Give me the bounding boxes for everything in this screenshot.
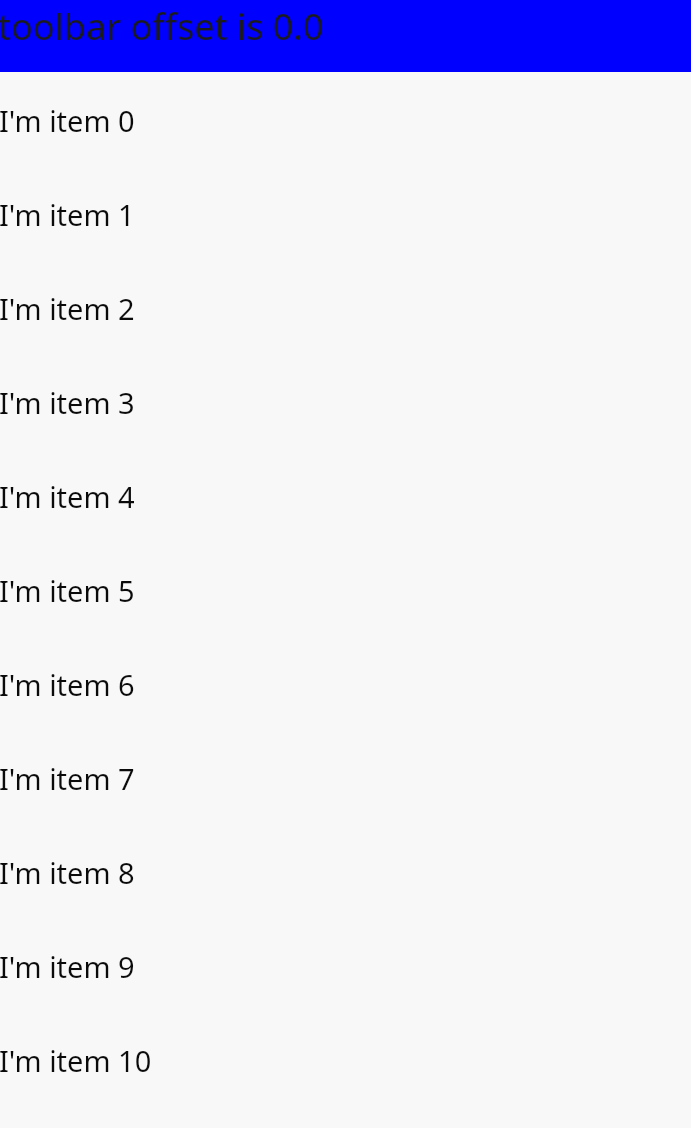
button[interactable]: I'm item 9 xyxy=(0,918,691,1012)
button[interactable]: I'm item 0 xyxy=(0,72,691,166)
button[interactable]: I'm item 4 xyxy=(0,448,691,542)
staticText: I'm item 6 xyxy=(0,665,135,704)
staticText: I'm item 5 xyxy=(0,571,135,610)
staticText: I'm item 10 xyxy=(0,1041,152,1080)
staticText: toolbar offset is 0.0 xyxy=(0,2,324,51)
button[interactable]: I'm item 2 xyxy=(0,260,691,354)
staticText: I'm item 1 xyxy=(0,195,135,234)
staticText: I'm item 4 xyxy=(0,477,135,516)
button[interactable]: I'm item 7 xyxy=(0,730,691,824)
button[interactable]: I'm item 6 xyxy=(0,636,691,730)
staticText: I'm item 9 xyxy=(0,947,135,986)
button[interactable]: I'm item 8 xyxy=(0,824,691,918)
staticText: I'm item 2 xyxy=(0,289,135,328)
button[interactable]: I'm item 5 xyxy=(0,542,691,636)
staticText: I'm item 8 xyxy=(0,853,135,892)
button[interactable]: I'm item 10 xyxy=(0,1012,691,1106)
button[interactable]: I'm item 3 xyxy=(0,354,691,448)
button[interactable]: toolbar offset is 0.0 xyxy=(0,0,691,72)
button[interactable]: I'm item 1 xyxy=(0,166,691,260)
staticText: I'm item 7 xyxy=(0,759,135,798)
staticText: I'm item 3 xyxy=(0,383,135,422)
staticText: I'm item 0 xyxy=(0,101,135,140)
